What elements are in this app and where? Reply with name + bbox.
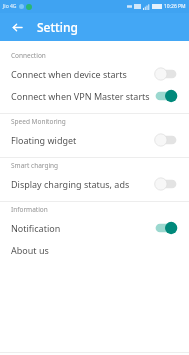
staticText: Connect when device starts: [11, 68, 153, 80]
staticText: Jio 4G: [3, 3, 17, 10]
staticText: Notification: [11, 222, 153, 234]
button[interactable]: On: [153, 89, 179, 103]
button[interactable]: Off: [153, 67, 179, 81]
button[interactable]: On: [153, 221, 179, 235]
button[interactable]: Off: [153, 177, 179, 191]
button[interactable]: Connect when VPN Master starts: [0, 85, 189, 107]
staticText: Connection: [11, 51, 46, 60]
staticText: Connect when VPN Master starts: [11, 90, 153, 102]
staticText: Display charging status, ads: [11, 178, 153, 190]
staticText: Setting: [37, 19, 78, 35]
staticText: Speed Monitoring: [11, 117, 66, 126]
staticText: Information: [11, 205, 48, 214]
staticText: 10:26 PM: [164, 3, 186, 10]
button[interactable]: Floating widget: [0, 129, 189, 151]
staticText: About us: [11, 244, 49, 256]
staticText: Smart charging: [11, 161, 59, 170]
staticText: Floating widget: [11, 134, 153, 146]
button[interactable]: Off: [153, 133, 179, 147]
button[interactable]: Display charging status, ads: [0, 173, 189, 195]
button[interactable]: Back: [7, 17, 27, 37]
button[interactable]: About us: [0, 239, 189, 261]
button[interactable]: Connect when device starts: [0, 63, 189, 85]
button[interactable]: Notification: [0, 217, 189, 239]
